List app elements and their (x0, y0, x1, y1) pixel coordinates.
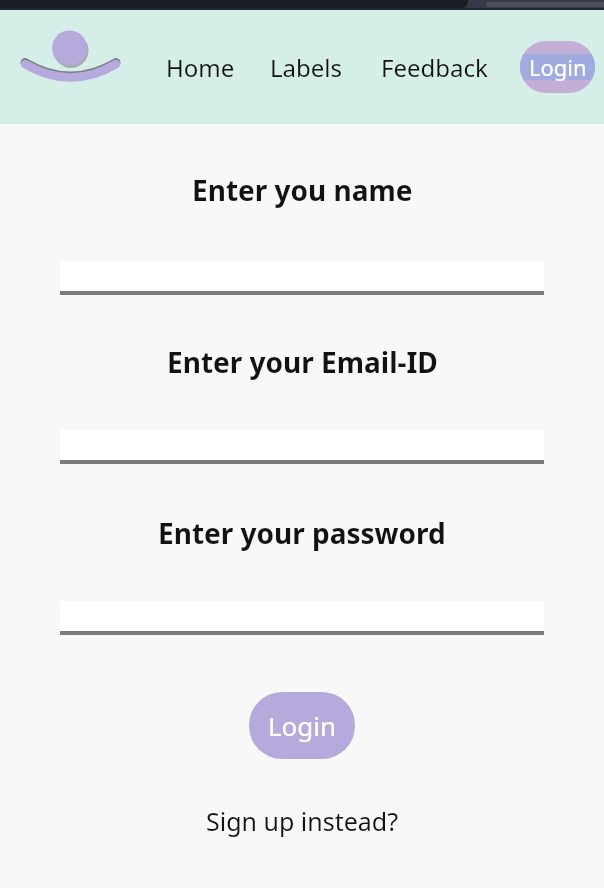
button[interactable]: Login (520, 41, 595, 93)
staticText: Login (529, 52, 587, 82)
staticText: Enter your Email-ID (167, 343, 438, 381)
button[interactable]: Labels (270, 51, 343, 84)
staticText: Home (166, 51, 235, 84)
staticText: Login (268, 708, 337, 743)
button[interactable]: Home (166, 51, 235, 84)
staticText: Enter your password (158, 514, 446, 552)
button[interactable]: Login (249, 692, 355, 759)
staticText: Enter you name (192, 171, 413, 209)
staticText: Feedback (381, 51, 488, 84)
button[interactable]: Sign up instead? (206, 804, 399, 838)
staticText: Labels (270, 51, 343, 84)
button[interactable] (0, 10, 140, 120)
staticText: Sign up instead? (206, 804, 399, 838)
button[interactable]: Feedback (381, 51, 488, 84)
